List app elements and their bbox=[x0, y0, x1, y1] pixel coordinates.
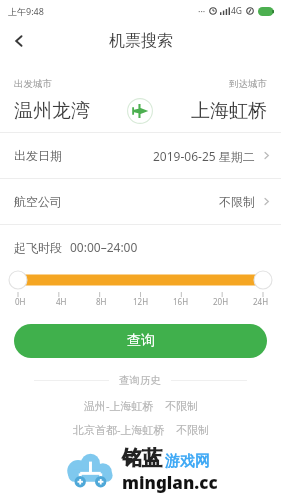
staticText: 出发日期 bbox=[14, 148, 62, 163]
button[interactable]: 温州龙湾 bbox=[14, 99, 127, 123]
staticText: 4H bbox=[56, 296, 67, 307]
button[interactable]: 查询 bbox=[14, 324, 267, 358]
staticText: 24H bbox=[253, 296, 269, 307]
staticText: 机票搜索 bbox=[109, 31, 173, 51]
staticText: 北京首都-上海虹桥 不限制 bbox=[73, 422, 209, 437]
button[interactable]: 航空公司 bbox=[0, 179, 281, 224]
staticText: 查询历史 bbox=[119, 374, 161, 387]
staticText: 0H bbox=[15, 296, 26, 307]
staticText: minglan.cc bbox=[122, 471, 218, 494]
button[interactable]: 上海虹桥 bbox=[153, 99, 267, 123]
staticText: 上海虹桥 bbox=[191, 99, 267, 123]
staticText: 温州龙湾 bbox=[14, 99, 90, 123]
staticText: 20H bbox=[213, 296, 229, 307]
staticText: 不限制 bbox=[219, 194, 255, 209]
staticText: 上午9:48 bbox=[8, 5, 44, 17]
button[interactable]: Departure time range slider bbox=[0, 271, 281, 289]
staticText: 铭蓝 bbox=[122, 446, 162, 471]
staticText: 4G bbox=[231, 5, 243, 17]
staticText: 到达城市 bbox=[229, 78, 267, 90]
staticText: 出发城市 bbox=[14, 78, 52, 90]
button[interactable]: 温州-上海虹桥 不限制 bbox=[0, 398, 281, 413]
button[interactable]: 北京首都-上海虹桥 不限制 bbox=[0, 422, 281, 437]
staticText: 2019-06-25 星期二 bbox=[153, 148, 255, 164]
button[interactable]: Back bbox=[0, 22, 38, 60]
staticText: 8H bbox=[96, 296, 107, 307]
staticText: 查询 bbox=[127, 332, 155, 350]
staticText: 游戏网 bbox=[165, 452, 210, 471]
button[interactable]: Swap cities bbox=[127, 98, 153, 124]
staticText: 16H bbox=[173, 296, 189, 307]
staticText: 12H bbox=[133, 296, 149, 307]
button[interactable]: 出发日期 bbox=[0, 133, 281, 178]
staticText: 00:00–24:00 bbox=[70, 239, 138, 255]
staticText: 航空公司 bbox=[14, 194, 62, 209]
staticText: 温州-上海虹桥 不限制 bbox=[84, 398, 198, 413]
staticText: ··· bbox=[198, 5, 206, 17]
staticText: 起飞时段 bbox=[14, 240, 62, 255]
